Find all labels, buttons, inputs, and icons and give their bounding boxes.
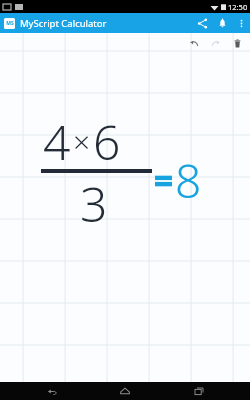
staticText: MyScript Calculator: [20, 17, 192, 30]
button[interactable]: Recent apps: [177, 382, 221, 400]
button[interactable]: Delete: [227, 33, 247, 53]
button[interactable]: Notifications: [212, 13, 232, 33]
staticText: 3: [80, 171, 108, 236]
button[interactable]: Share: [192, 13, 212, 33]
staticText: ×: [73, 121, 91, 162]
staticText: 8: [175, 149, 202, 212]
button[interactable]: Back: [30, 382, 74, 400]
button[interactable]: Undo: [183, 33, 205, 53]
button[interactable]: Home: [103, 382, 147, 400]
staticText: MS: [6, 20, 14, 27]
staticText: 12:50: [228, 2, 248, 12]
staticText: 6: [93, 109, 121, 174]
button[interactable]: Redo: [205, 33, 227, 53]
button[interactable]: More options: [232, 14, 250, 32]
staticText: 4: [43, 109, 71, 174]
